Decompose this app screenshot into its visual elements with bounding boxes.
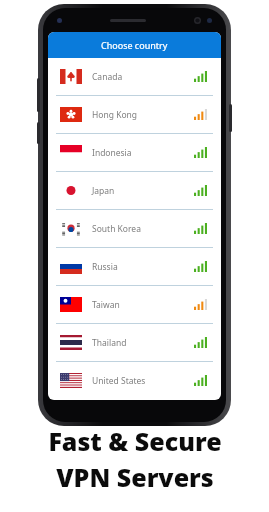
staticText: Indonesia: [92, 147, 132, 159]
staticText: Russia: [92, 261, 118, 273]
staticText: Japan: [92, 185, 115, 197]
other: Signal strength: [194, 375, 207, 386]
other: Signal strength: [194, 261, 207, 272]
other: Signal strength: [194, 299, 207, 310]
button[interactable]: Hong Kong: [48, 96, 221, 133]
button[interactable]: Japan: [48, 172, 221, 209]
staticText: Taiwan: [92, 299, 120, 311]
other: Signal strength: [194, 109, 207, 120]
button[interactable]: Taiwan: [48, 286, 221, 323]
staticText: United States: [92, 375, 146, 387]
staticText: VPN Servers: [56, 460, 214, 494]
button[interactable]: Russia: [48, 248, 221, 285]
staticText: South Korea: [92, 223, 141, 235]
staticText: Canada: [92, 71, 123, 83]
other: Signal strength: [194, 185, 207, 196]
other: Signal strength: [194, 223, 207, 234]
button[interactable]: Choose country: [48, 32, 221, 58]
button[interactable]: United States: [48, 362, 221, 399]
other: Signal strength: [194, 71, 207, 82]
button[interactable]: Canada: [48, 58, 221, 95]
staticText: Choose country: [101, 39, 168, 51]
button[interactable]: Indonesia: [48, 134, 221, 171]
staticText: Hong Kong: [92, 109, 138, 121]
staticText: Fast & Secure: [48, 424, 222, 458]
other: Signal strength: [194, 337, 207, 348]
other: Signal strength: [194, 147, 207, 158]
button[interactable]: Thailand: [48, 324, 221, 361]
button[interactable]: South Korea: [48, 210, 221, 247]
staticText: Thailand: [92, 337, 127, 349]
